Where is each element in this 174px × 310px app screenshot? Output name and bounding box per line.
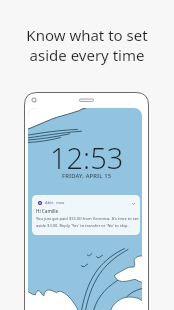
staticText: Know what to set aside every time xyxy=(0,25,174,66)
staticText: You just got paid $33.00 from Veronica. … xyxy=(36,216,140,228)
staticText: Hi Camille xyxy=(36,208,59,214)
staticText: now xyxy=(56,200,65,206)
button[interactable]: Able xyxy=(32,195,140,235)
staticText: FRIDAY, APRIL 15 xyxy=(62,172,112,180)
staticText: Able xyxy=(45,200,54,206)
staticText: 12:53 xyxy=(50,138,124,177)
